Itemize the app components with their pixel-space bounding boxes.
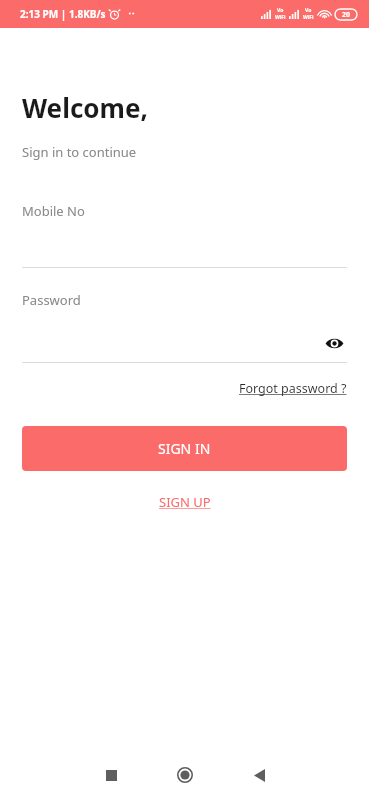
staticText: WiFi [275,14,286,21]
staticText: SIGN UP [159,493,211,511]
button[interactable]: Password [22,291,347,363]
button[interactable]: SIGN IN [22,426,347,471]
staticText: Vo [305,7,312,14]
staticText: SIGN IN [158,439,211,458]
button[interactable]: Back [246,762,272,788]
staticText: WiFi [303,14,314,21]
staticText: Welcome, [22,90,148,125]
staticText: Sign in to continue [22,143,137,161]
button[interactable]: Show password [321,330,347,356]
staticText: Forgot password ? [239,380,347,397]
button[interactable]: Mobile No [22,202,347,268]
button[interactable]: Forgot password ? [239,380,347,397]
staticText: Vo [277,7,284,14]
staticText: 2:13 PM | 1.8KB/s [20,7,106,21]
staticText: Mobile No [22,202,85,220]
staticText: 20 [342,10,351,20]
button[interactable]: Recent apps [98,762,124,788]
staticText: Password [22,291,81,309]
button[interactable]: SIGN UP [155,489,215,515]
button[interactable]: Home [170,760,200,790]
